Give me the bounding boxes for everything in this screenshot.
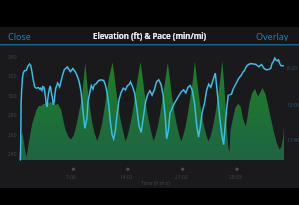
staticText: Overlay	[256, 30, 289, 41]
staticText: 280	[8, 112, 17, 119]
button[interactable]: Overlay	[248, 27, 299, 44]
staticText: 10:00	[287, 102, 299, 109]
staticText: 14:01	[120, 174, 133, 181]
button[interactable]: Close	[0, 27, 39, 44]
staticText: 340	[8, 54, 17, 61]
staticText: Elevation (ft) & Pace (min/mi)	[93, 30, 207, 41]
staticText: 260	[8, 132, 17, 139]
staticText: 7:00	[66, 174, 76, 181]
staticText: 8:20	[287, 65, 297, 72]
staticText: 28:03	[229, 174, 242, 181]
staticText: 300	[8, 93, 17, 100]
staticText: Time (h:m:s)	[141, 180, 170, 187]
staticText: 240	[8, 151, 17, 158]
staticText: 21:02	[175, 174, 188, 181]
staticText: Close	[8, 30, 31, 41]
staticText: 320	[8, 73, 17, 80]
staticText: 11:40	[287, 137, 299, 144]
